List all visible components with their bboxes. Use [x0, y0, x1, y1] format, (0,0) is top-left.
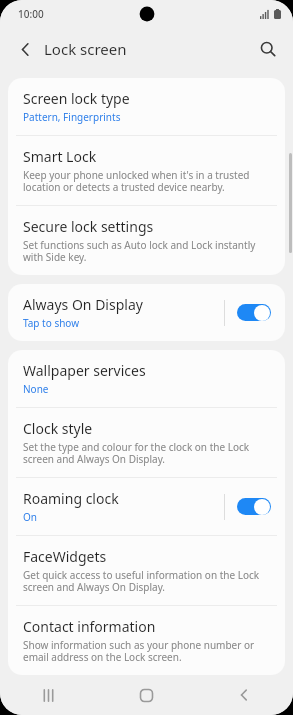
staticText: Secure lock settings — [23, 217, 154, 236]
staticText: Pattern, Fingerprints — [23, 110, 121, 124]
staticText: Roaming clock — [23, 489, 119, 508]
staticText: Wallpaper services — [23, 361, 146, 380]
button[interactable]: Wallpaper services — [8, 350, 285, 407]
staticText: Lock screen — [44, 39, 127, 59]
staticText: Contact information — [23, 617, 156, 636]
staticText: Keep your phone unlocked when it's in a … — [23, 168, 273, 194]
button[interactable]: Smart Lock — [8, 136, 285, 205]
staticText: On — [23, 510, 37, 524]
button[interactable]: Search — [251, 32, 285, 66]
button[interactable]: Toggle Roaming clock — [237, 498, 271, 515]
button[interactable]: Clock style — [8, 408, 285, 477]
staticText: Screen lock type — [23, 89, 130, 108]
button[interactable]: Home — [97, 675, 195, 715]
staticText: None — [23, 382, 49, 396]
staticText: Show information such as your phone numb… — [23, 638, 273, 664]
staticText: Tap to show — [23, 316, 80, 330]
staticText: Always On Display — [23, 295, 143, 314]
button[interactable]: FaceWidgets — [8, 536, 285, 605]
button[interactable]: Back — [195, 675, 293, 715]
staticText: Set functions such as Auto lock and Lock… — [23, 238, 273, 264]
staticText: 10:00 — [18, 7, 44, 21]
staticText: Clock style — [23, 419, 93, 438]
staticText: Smart Lock — [23, 147, 97, 166]
button[interactable]: Toggle Always On Display — [237, 304, 271, 321]
button[interactable]: Roaming clock — [8, 478, 285, 535]
button[interactable]: Recent apps — [0, 675, 97, 715]
staticText: FaceWidgets — [23, 547, 107, 566]
button[interactable]: Screen lock type — [8, 78, 285, 135]
button[interactable]: Contact information — [8, 606, 285, 675]
staticText: Get quick access to useful information o… — [23, 568, 273, 594]
button[interactable]: Secure lock settings — [8, 206, 285, 275]
button[interactable]: Always On Display — [8, 284, 285, 341]
staticText: Set the type and colour for the clock on… — [23, 440, 273, 466]
button[interactable]: Back — [8, 32, 42, 66]
